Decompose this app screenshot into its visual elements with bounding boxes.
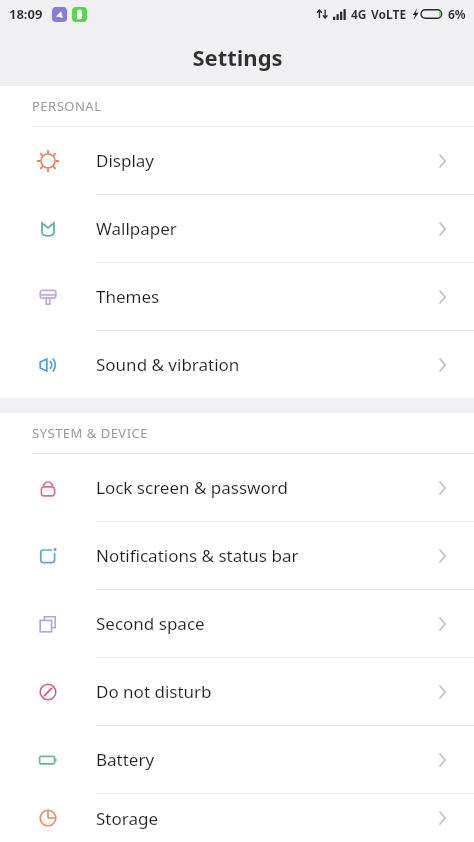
staticText: Notifications & status bar [96, 544, 433, 567]
button[interactable]: Notifications & status bar [0, 522, 474, 589]
staticText: Storage [96, 807, 433, 830]
staticText: 6% [448, 6, 466, 22]
staticText: Wallpaper [96, 217, 433, 240]
staticText: 18:09 [9, 5, 43, 23]
button[interactable]: Storage [0, 794, 474, 842]
button[interactable]: Battery [0, 726, 474, 793]
button[interactable]: Do not disturb [0, 658, 474, 725]
staticText: Settings [192, 42, 283, 72]
button[interactable]: Sound & vibration [0, 331, 474, 398]
staticText: Do not disturb [96, 680, 433, 703]
staticText: Sound & vibration [96, 353, 433, 376]
staticText: Second space [96, 612, 433, 635]
button[interactable]: Display [0, 127, 474, 194]
button[interactable]: Lock screen & password [0, 454, 474, 521]
staticText: 4G [351, 6, 367, 22]
button[interactable]: Themes [0, 263, 474, 330]
staticText: PERSONAL [32, 97, 102, 115]
button[interactable]: Wallpaper [0, 195, 474, 262]
staticText: Display [96, 149, 433, 172]
staticText: Battery [96, 748, 433, 771]
staticText: VoLTE [371, 6, 407, 22]
staticText: SYSTEM & DEVICE [32, 424, 149, 442]
staticText: Lock screen & password [96, 476, 433, 499]
button[interactable]: Second space [0, 590, 474, 657]
staticText: Themes [96, 285, 433, 308]
